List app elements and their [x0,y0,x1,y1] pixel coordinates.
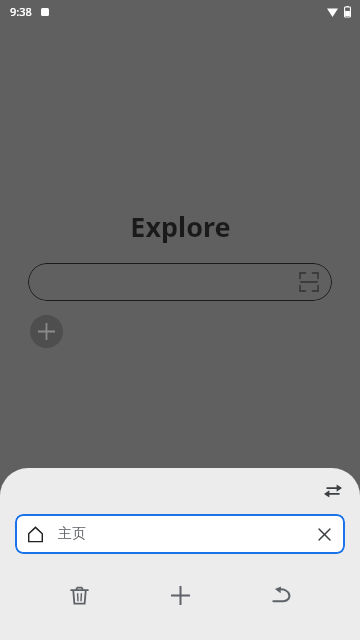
button[interactable]: Switch [320,478,346,504]
button[interactable]: Clear [307,517,341,551]
staticText: 主页 [58,525,86,543]
button[interactable]: Delete [56,572,102,618]
button[interactable]: Scan code [300,273,318,291]
button[interactable]: New tab [30,315,63,348]
button[interactable]: Add [157,572,203,618]
button[interactable]: Scan code [28,263,332,301]
button[interactable]: Undo [259,572,305,618]
button[interactable]: 主页 [15,514,345,554]
staticText: 9:38 [10,4,32,19]
staticText: Explore [130,208,231,245]
